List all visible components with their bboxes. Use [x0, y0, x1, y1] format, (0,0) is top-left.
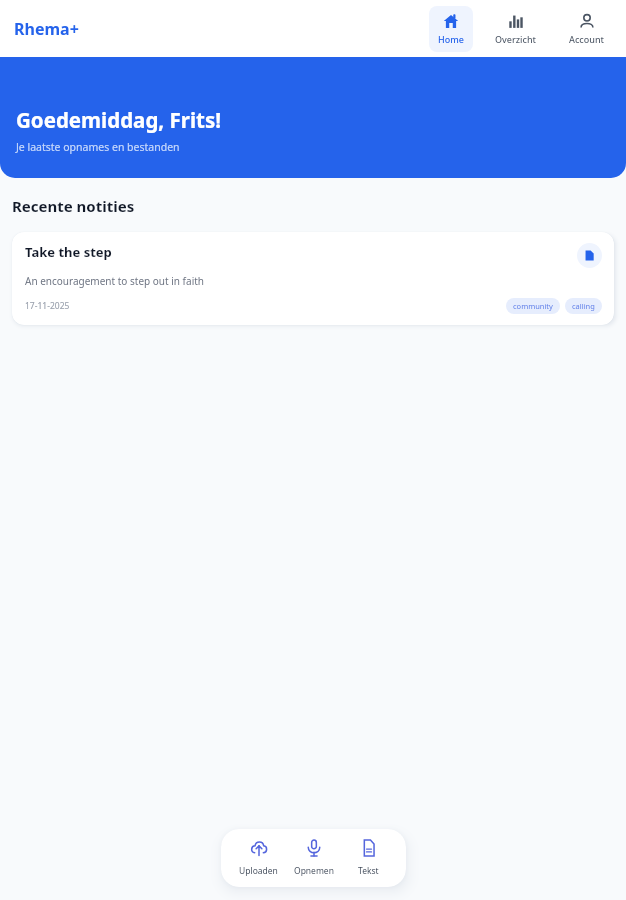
other: Tekst	[360, 839, 378, 857]
staticText: Account	[569, 33, 604, 45]
staticText: Tekst	[358, 865, 379, 877]
button[interactable]: Home	[429, 6, 473, 52]
button[interactable]: Recente notities	[12, 196, 135, 216]
button[interactable]: Overzicht	[486, 6, 546, 52]
other: Uploaden	[250, 839, 268, 857]
other: Opnemen	[305, 839, 323, 857]
button[interactable]: Open notitie	[577, 243, 602, 268]
button[interactable]: Uploaden	[231, 837, 286, 879]
staticText: community	[513, 301, 553, 311]
button[interactable]: community	[506, 298, 560, 314]
staticText: Opnemen	[294, 865, 334, 877]
staticText: Overzicht	[495, 33, 537, 45]
staticText: Take the step	[25, 243, 112, 261]
staticText: 17-11-2025	[25, 300, 70, 312]
button[interactable]: Account	[560, 6, 613, 52]
staticText: Je laatste opnames en bestanden	[16, 140, 180, 154]
staticText: An encouragement to step out in faith	[25, 274, 204, 288]
other: Overzicht	[508, 13, 524, 29]
button[interactable]: Take the step	[12, 232, 614, 325]
button[interactable]: Tekst	[341, 837, 396, 879]
other: Account	[579, 13, 595, 29]
button[interactable]: Opnemen	[286, 837, 341, 879]
staticText: Home	[438, 33, 464, 45]
other: Home	[443, 13, 459, 29]
staticText: Goedemiddag, Frits!	[16, 106, 222, 134]
button[interactable]: Rhema+	[14, 18, 79, 40]
staticText: calling	[572, 301, 595, 311]
staticText: Uploaden	[239, 865, 278, 877]
button[interactable]: calling	[565, 298, 602, 314]
